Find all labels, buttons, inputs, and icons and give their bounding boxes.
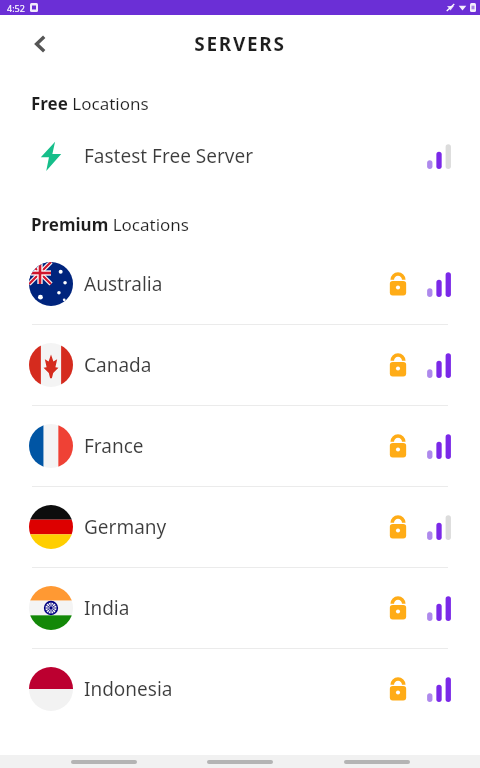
staticText: Premium Locations (31, 213, 190, 236)
button[interactable]: Australia (0, 244, 480, 324)
button[interactable]: Fastest Free Server (0, 127, 480, 185)
staticText: Germany (84, 514, 386, 540)
button[interactable]: Canada (0, 325, 480, 405)
staticText: Free Locations (31, 92, 149, 115)
staticText: Canada (84, 352, 386, 378)
staticText: Indonesia (84, 676, 386, 702)
button[interactable]: France (0, 406, 480, 486)
button[interactable]: Navigation (71, 760, 137, 764)
button[interactable]: Germany (0, 487, 480, 567)
button[interactable]: Navigation (207, 760, 273, 764)
staticText: India (84, 595, 386, 621)
button[interactable]: Back (21, 24, 61, 64)
button[interactable]: India (0, 568, 480, 648)
staticText: Fastest Free Server (84, 143, 426, 169)
button[interactable]: Indonesia (0, 649, 480, 729)
button[interactable]: Navigation (344, 760, 410, 764)
staticText: Australia (84, 271, 386, 297)
staticText: SERVERS (0, 31, 480, 57)
staticText: France (84, 433, 386, 459)
staticText: 4:52 (7, 2, 25, 14)
